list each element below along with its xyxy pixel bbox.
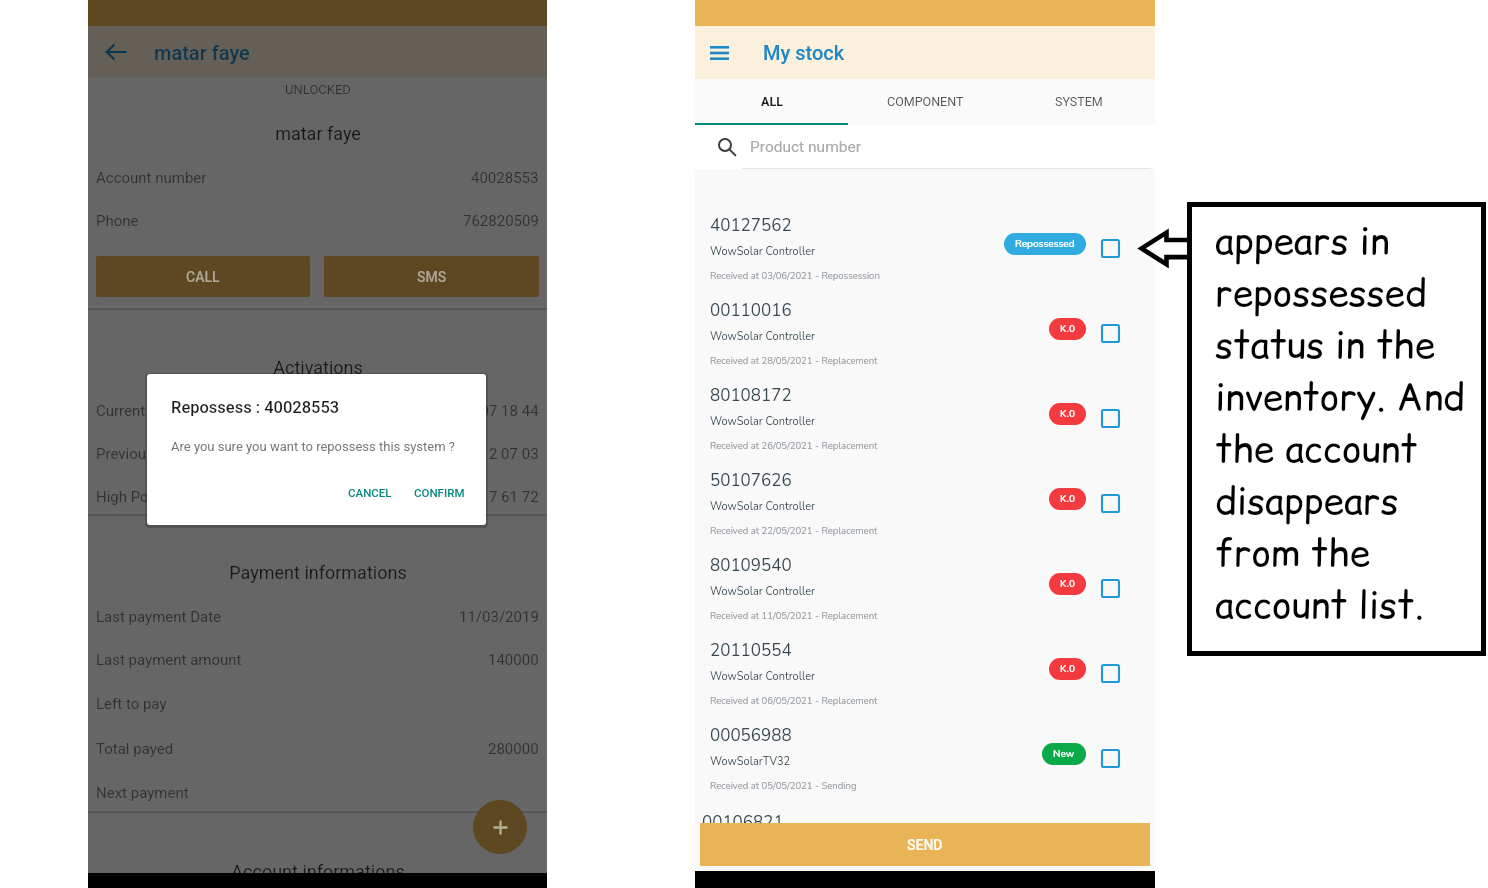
button[interactable]: Select 50107626 <box>1102 495 1119 512</box>
staticText: 80109540 <box>710 554 792 577</box>
button[interactable]: CALL <box>96 256 310 297</box>
staticText: Current activation <box>96 402 215 420</box>
staticText: 00106821 <box>702 811 784 834</box>
button[interactable]: Add <box>473 800 527 854</box>
staticText: Are you sure you want to repossess this … <box>171 439 455 454</box>
staticText: 140000 <box>488 651 539 669</box>
staticText: K.0 <box>1060 577 1075 591</box>
staticText: WowSolar Controller <box>710 244 815 259</box>
staticText: Left to pay <box>96 695 167 713</box>
button[interactable]: 50107626 <box>695 469 1155 554</box>
staticText: 26/07/2019 07 18 44 <box>397 402 539 420</box>
staticText: 09/07/2019 12 07 03 <box>397 445 539 463</box>
button[interactable]: 80108172 <box>695 384 1155 469</box>
button[interactable]: 00110016 <box>695 299 1155 384</box>
staticText: 40028553 <box>471 169 539 187</box>
button[interactable]: 40127562 <box>695 214 1155 299</box>
button[interactable]: SMS <box>324 256 539 297</box>
staticText: 20110554 <box>710 639 792 662</box>
staticText: Repossess : 40028553 <box>171 398 340 417</box>
staticText: My stock <box>763 41 845 64</box>
staticText: COMPONENT <box>887 94 964 109</box>
staticText: 50107626 <box>710 469 792 492</box>
staticText: 00056988 <box>710 724 792 747</box>
button[interactable]: Select 20110554 <box>1102 665 1119 682</box>
staticText: 762820509 <box>463 212 539 230</box>
button[interactable]: CONFIRM <box>406 481 473 504</box>
staticText: Received at 11/05/2021 - Replacement <box>710 609 878 622</box>
button[interactable]: Select 40127562 <box>1102 240 1119 257</box>
staticText: Product number <box>750 138 861 156</box>
staticText: WowSolar Controller <box>710 414 815 429</box>
staticText: 00110016 <box>710 299 792 322</box>
staticText: Next payment <box>96 784 189 802</box>
button[interactable]: Select 80108172 <box>1102 410 1119 427</box>
button[interactable]: Select 00056988 <box>1102 750 1119 767</box>
button[interactable]: SYSTEM <box>1002 79 1155 125</box>
button[interactable]: COMPONENT <box>849 79 1002 125</box>
staticText: Activations <box>273 357 363 378</box>
staticText: 80108172 <box>710 384 792 407</box>
staticText: Received at 26/05/2021 - Replacement <box>710 439 878 452</box>
staticText: Received at 03/06/2021 - Repossession <box>710 269 880 282</box>
staticText: WowSolar Controller <box>710 584 815 599</box>
staticText: Received at 06/05/2021 - Replacement <box>710 694 878 707</box>
staticText: Previous activation <box>96 445 223 463</box>
button[interactable]: Select 80109540 <box>1102 580 1119 597</box>
staticText: K.0 <box>1060 322 1075 336</box>
staticText: K.0 <box>1060 407 1075 421</box>
staticText: Received at 28/05/2021 - Replacement <box>710 354 878 367</box>
staticText: Repossessed <box>1015 237 1075 251</box>
staticText: UNLOCKED <box>285 82 351 97</box>
staticText: Phone <box>96 212 139 230</box>
staticText: matar faye <box>275 123 361 144</box>
staticText: Account informations <box>231 861 405 882</box>
staticText: SYSTEM <box>1055 94 1103 109</box>
staticText: K.0 <box>1060 662 1075 676</box>
staticText: ALL <box>761 94 783 109</box>
button[interactable]: 20110554 <box>695 639 1155 724</box>
staticText: 280000 <box>488 740 539 758</box>
button[interactable]: Open navigation menu <box>704 38 734 68</box>
staticText: K.0 <box>1060 492 1075 506</box>
button[interactable]: 80109540 <box>695 554 1155 639</box>
staticText: SMS <box>417 269 447 285</box>
staticText: appears in repossessed status in the inv… <box>1215 215 1470 631</box>
staticText: Payment informations <box>229 562 407 583</box>
staticText: matar faye <box>154 41 250 64</box>
staticText: CANCEL <box>348 486 392 499</box>
button[interactable]: SEND <box>700 823 1150 866</box>
staticText: New <box>1053 747 1075 761</box>
button[interactable]: ALL <box>695 79 849 125</box>
staticText: WowSolar Controller <box>710 499 815 514</box>
staticText: Received at 05/05/2021 - Sending <box>710 779 857 792</box>
staticText: CONFIRM <box>414 486 465 499</box>
staticText: CALL <box>186 269 220 285</box>
staticText: SEND <box>907 837 943 853</box>
staticText: 14/04/2019 17 61 72 <box>397 488 539 506</box>
staticText: Last payment Date <box>96 608 222 626</box>
button[interactable]: Back <box>101 37 131 67</box>
button[interactable]: Select 00110016 <box>1102 325 1119 342</box>
staticText: WowSolarTV32 <box>710 754 791 769</box>
staticText: Account number <box>96 169 207 187</box>
staticText: WowSolar Controller <box>710 329 815 344</box>
button[interactable]: CANCEL <box>340 481 400 504</box>
staticText: Received at 22/05/2021 - Replacement <box>710 524 878 537</box>
staticText: WowSolar Controller <box>710 669 815 684</box>
staticText: High Power <box>96 488 173 506</box>
staticText: 40127562 <box>710 214 792 237</box>
staticText: Last payment amount <box>96 651 242 669</box>
button[interactable]: 00056988 <box>695 724 1155 809</box>
staticText: Total payed <box>96 740 174 758</box>
staticText: 11/03/2019 <box>459 608 539 626</box>
